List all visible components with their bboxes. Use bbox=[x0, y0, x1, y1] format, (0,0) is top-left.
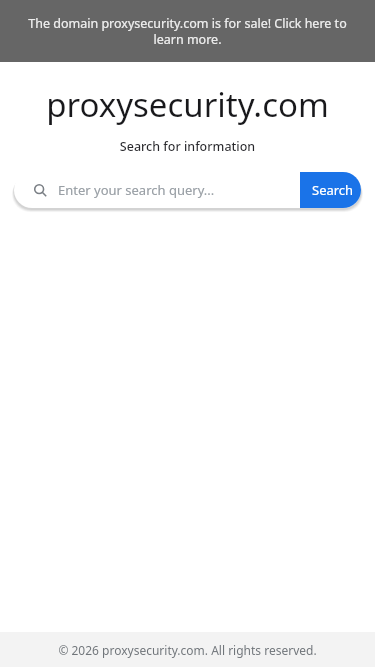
other: Search bbox=[33, 183, 48, 198]
button[interactable]: Search bbox=[14, 172, 300, 208]
staticText: Search for information bbox=[0, 138, 375, 155]
staticText: proxysecurity.com bbox=[0, 82, 375, 127]
staticText: Search bbox=[312, 181, 354, 199]
staticText: The domain proxysecurity.com is for sale… bbox=[13, 15, 362, 47]
staticText: © 2026 proxysecurity.com. All rights res… bbox=[0, 642, 375, 658]
button[interactable]: The domain proxysecurity.com is for sale… bbox=[0, 0, 375, 62]
button[interactable]: Search bbox=[300, 172, 361, 208]
staticText: Enter your search query... bbox=[58, 181, 215, 199]
